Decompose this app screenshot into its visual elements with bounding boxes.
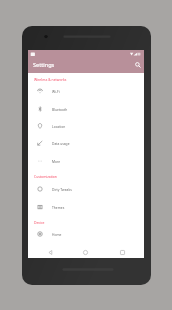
button[interactable]: Data usage: [28, 134, 144, 152]
button[interactable]: Back: [44, 246, 57, 259]
button[interactable]: Wi-Fi: [28, 82, 144, 100]
staticText: Wi-Fi: [52, 89, 60, 93]
button[interactable]: Home: [79, 246, 92, 259]
staticText: Settings: [33, 61, 55, 69]
staticText: Device: [34, 220, 45, 225]
staticText: Wireless & networks: [34, 77, 67, 82]
button[interactable]: Recent apps: [116, 246, 129, 259]
staticText: Themes: [52, 205, 65, 209]
button[interactable]: Location: [28, 117, 144, 135]
staticText: Location: [52, 124, 66, 128]
button[interactable]: More: [28, 152, 144, 170]
staticText: Data usage: [52, 141, 70, 145]
button[interactable]: Themes: [28, 198, 144, 216]
button[interactable]: Home: [28, 225, 144, 243]
staticText: More: [52, 159, 61, 163]
staticText: Home: [52, 232, 62, 236]
button[interactable]: Dirty Tweaks: [28, 180, 144, 198]
staticText: Bluetooth: [52, 107, 68, 111]
button[interactable]: Bluetooth: [28, 100, 144, 118]
button[interactable]: Search: [132, 59, 143, 70]
staticText: Customization: [34, 174, 57, 179]
staticText: Dirty Tweaks: [52, 187, 72, 191]
